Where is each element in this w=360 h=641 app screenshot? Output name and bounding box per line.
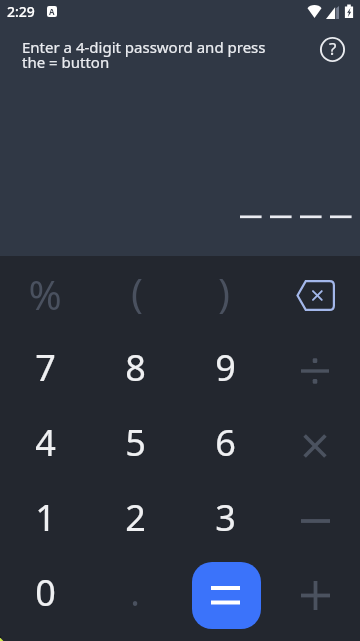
staticText: ): [218, 265, 230, 319]
button[interactable]: Minus: [270, 480, 360, 555]
staticText: 9: [215, 343, 236, 392]
button[interactable]: Backspace: [270, 256, 360, 330]
button[interactable]: Plus: [270, 555, 360, 630]
button[interactable]: Password display: [0, 206, 360, 228]
button[interactable]: Divide: [270, 330, 360, 405]
button[interactable]: %: [0, 256, 90, 330]
staticText: 2:29: [7, 2, 35, 21]
button[interactable]: 4: [0, 405, 90, 480]
staticText: ?: [329, 37, 337, 60]
staticText: Enter a 4-digit password and press the =…: [22, 37, 270, 73]
button[interactable]: 7: [0, 330, 90, 405]
staticText: (: [131, 265, 143, 319]
button[interactable]: Equals: [192, 562, 261, 629]
staticText: A: [49, 6, 55, 17]
button[interactable]: 0: [0, 555, 90, 630]
staticText: 6: [215, 418, 236, 467]
button[interactable]: 1: [0, 480, 90, 555]
staticText: 7: [35, 343, 56, 392]
staticText: .: [130, 568, 140, 617]
button[interactable]: 5: [90, 405, 180, 480]
button[interactable]: Help: [316, 33, 348, 65]
button[interactable]: 6: [180, 405, 270, 480]
button[interactable]: 8: [90, 330, 180, 405]
staticText: 0: [35, 568, 56, 617]
button[interactable]: (: [90, 256, 180, 330]
button[interactable]: 2: [90, 480, 180, 555]
staticText: 4: [35, 418, 56, 467]
staticText: 2: [125, 493, 146, 542]
staticText: %: [28, 267, 62, 321]
staticText: 8: [125, 343, 146, 392]
button[interactable]: ): [180, 256, 270, 330]
staticText: 5: [125, 418, 146, 467]
button[interactable]: 3: [180, 480, 270, 555]
button[interactable]: 9: [180, 330, 270, 405]
staticText: 3: [215, 493, 236, 542]
staticText: 1: [35, 493, 56, 542]
button[interactable]: Multiply: [270, 405, 360, 480]
